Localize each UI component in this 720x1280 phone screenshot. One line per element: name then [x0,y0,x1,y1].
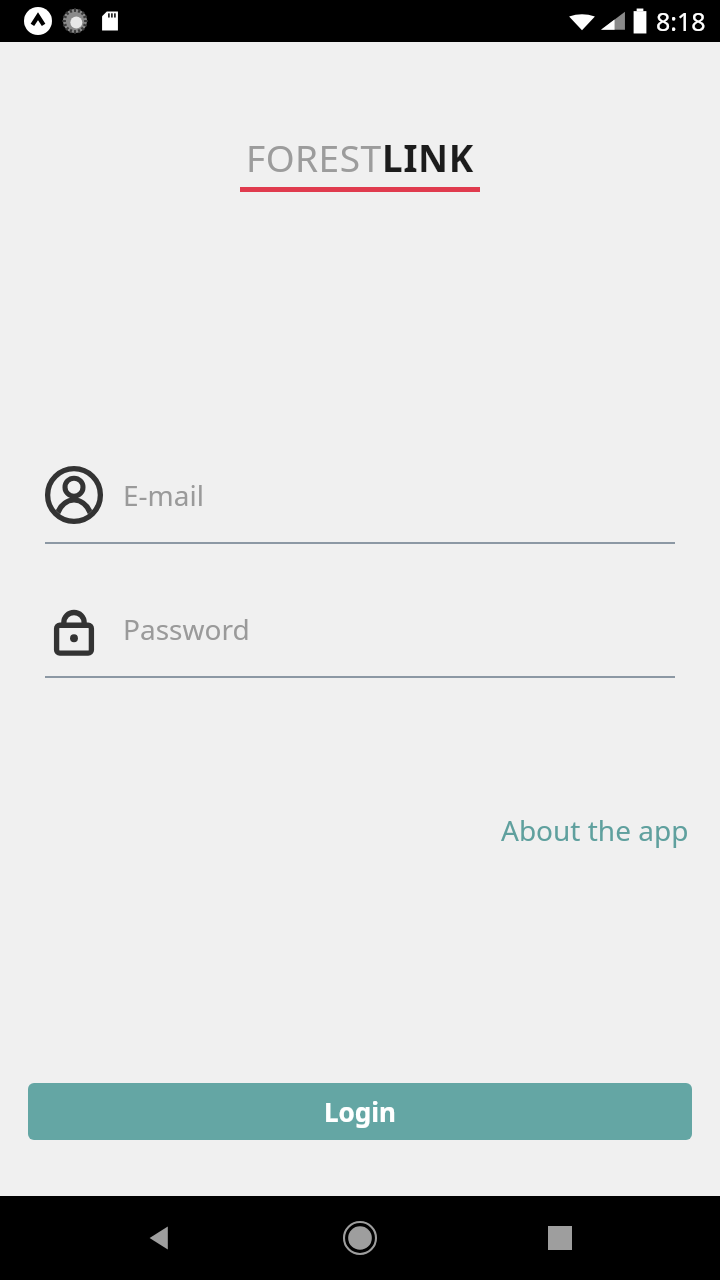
button[interactable]: Account [45,462,675,544]
button[interactable]: Password [45,596,675,678]
button[interactable]: Back [130,1208,190,1268]
button[interactable]: Home [328,1206,392,1270]
staticText: FOREST [246,132,382,182]
button[interactable]: About the app [499,807,691,853]
staticText: LINK [382,132,474,182]
staticText: About the app [501,811,689,849]
staticText: 8:18 [656,4,706,38]
staticText: Password [123,610,250,648]
button[interactable]: Recent apps [530,1208,590,1268]
staticText: Login [324,1094,396,1129]
other: Password [45,600,103,658]
staticText: E-mail [123,476,204,514]
button[interactable]: Login [28,1083,692,1140]
other: Account [45,466,103,524]
